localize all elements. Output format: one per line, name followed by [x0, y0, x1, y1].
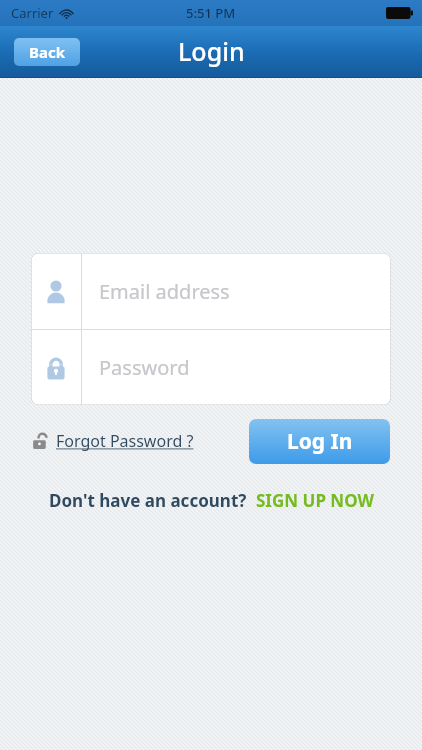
- staticText: Email address: [99, 278, 230, 305]
- button[interactable]: Password: [31, 330, 391, 405]
- staticText: Carrier: [11, 4, 54, 22]
- other: Email: [43, 279, 69, 305]
- staticText: Don't have an account?: [49, 489, 247, 512]
- staticText: Password: [99, 354, 190, 381]
- staticText: Back: [29, 42, 66, 62]
- staticText: Login: [178, 34, 245, 68]
- button[interactable]: Log In: [249, 419, 390, 464]
- staticText: Forgot Password ?: [56, 430, 194, 452]
- staticText: 5:51 PM: [186, 4, 236, 22]
- button[interactable]: SIGN UP NOW: [256, 489, 374, 512]
- staticText: SIGN UP NOW: [256, 489, 374, 512]
- button[interactable]: Forgot Password ?: [31, 430, 194, 452]
- button[interactable]: Email: [31, 253, 391, 329]
- other: Password: [43, 355, 69, 381]
- staticText: Log In: [287, 427, 353, 456]
- button[interactable]: Back: [14, 38, 80, 66]
